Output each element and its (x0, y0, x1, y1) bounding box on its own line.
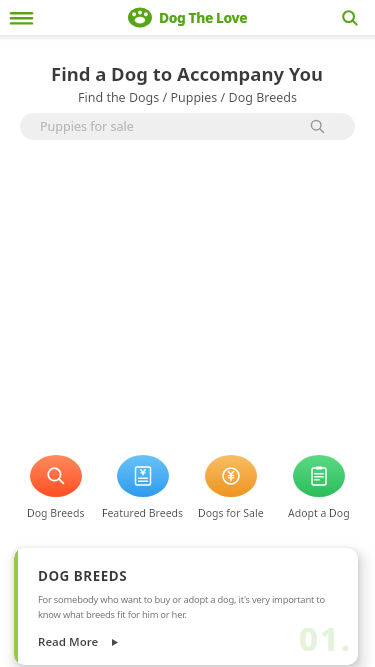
staticText: Adopt a Dog (288, 506, 350, 520)
button[interactable] (6, 3, 36, 33)
staticText: Puppies for sale (40, 118, 134, 135)
button[interactable]: Adopt a Dog (275, 455, 363, 520)
button[interactable]: Featured Breeds (99, 455, 187, 520)
staticText: 01. (299, 616, 353, 661)
staticText: Featured Breeds (102, 506, 184, 520)
staticText: Find a Dog to Accompany You (51, 61, 324, 85)
staticText: DOG BREEDS (38, 567, 128, 585)
button[interactable]: Dog The Love (128, 7, 248, 28)
staticText: Dogs for Sale (198, 506, 264, 520)
staticText: Dog Breeds (27, 506, 85, 520)
button[interactable]: Dog Breeds (12, 455, 99, 520)
staticText: Read More (38, 634, 99, 650)
button[interactable]: Read More (38, 634, 118, 650)
button[interactable]: Puppies for sale (20, 113, 355, 140)
staticText: Find the Dogs / Puppies / Dog Breeds (78, 89, 297, 105)
staticText: Dog The Love (159, 8, 248, 27)
button[interactable]: 01. (14, 548, 358, 665)
button[interactable]: Dogs for Sale (187, 455, 275, 520)
button[interactable] (337, 5, 363, 31)
staticText: For somebody who want to buy or adopt a … (38, 593, 325, 621)
